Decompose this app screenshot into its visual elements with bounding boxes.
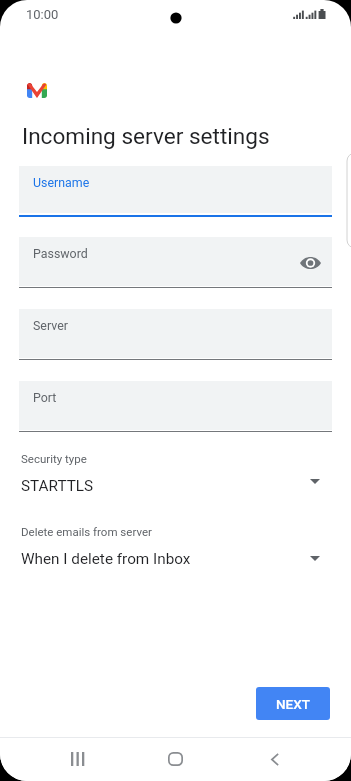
button[interactable]: Back bbox=[245, 741, 304, 777]
staticText: Port bbox=[33, 390, 57, 405]
staticText: Security type bbox=[21, 452, 87, 465]
staticText: STARTTLS bbox=[21, 477, 94, 495]
button[interactable]: Password bbox=[19, 237, 332, 289]
button[interactable]: Delete emails from server bbox=[0, 523, 351, 567]
button[interactable]: Username bbox=[19, 166, 332, 217]
button[interactable]: Home bbox=[146, 741, 205, 777]
button[interactable]: Recents bbox=[48, 741, 107, 777]
button[interactable]: NEXT bbox=[256, 687, 330, 720]
staticText: Delete emails from server bbox=[21, 525, 152, 538]
button[interactable]: Show password bbox=[297, 250, 323, 276]
staticText: Password bbox=[33, 246, 88, 261]
staticText: NEXT bbox=[276, 696, 310, 712]
staticText: When I delete from Inbox bbox=[21, 550, 191, 568]
button[interactable]: Server bbox=[19, 309, 332, 361]
staticText: Username bbox=[33, 175, 90, 190]
button[interactable]: Port bbox=[19, 381, 332, 433]
staticText: Incoming server settings bbox=[22, 123, 270, 149]
button[interactable]: Security type bbox=[0, 450, 351, 494]
staticText: 10:00 bbox=[26, 7, 59, 22]
staticText: Server bbox=[33, 318, 68, 333]
